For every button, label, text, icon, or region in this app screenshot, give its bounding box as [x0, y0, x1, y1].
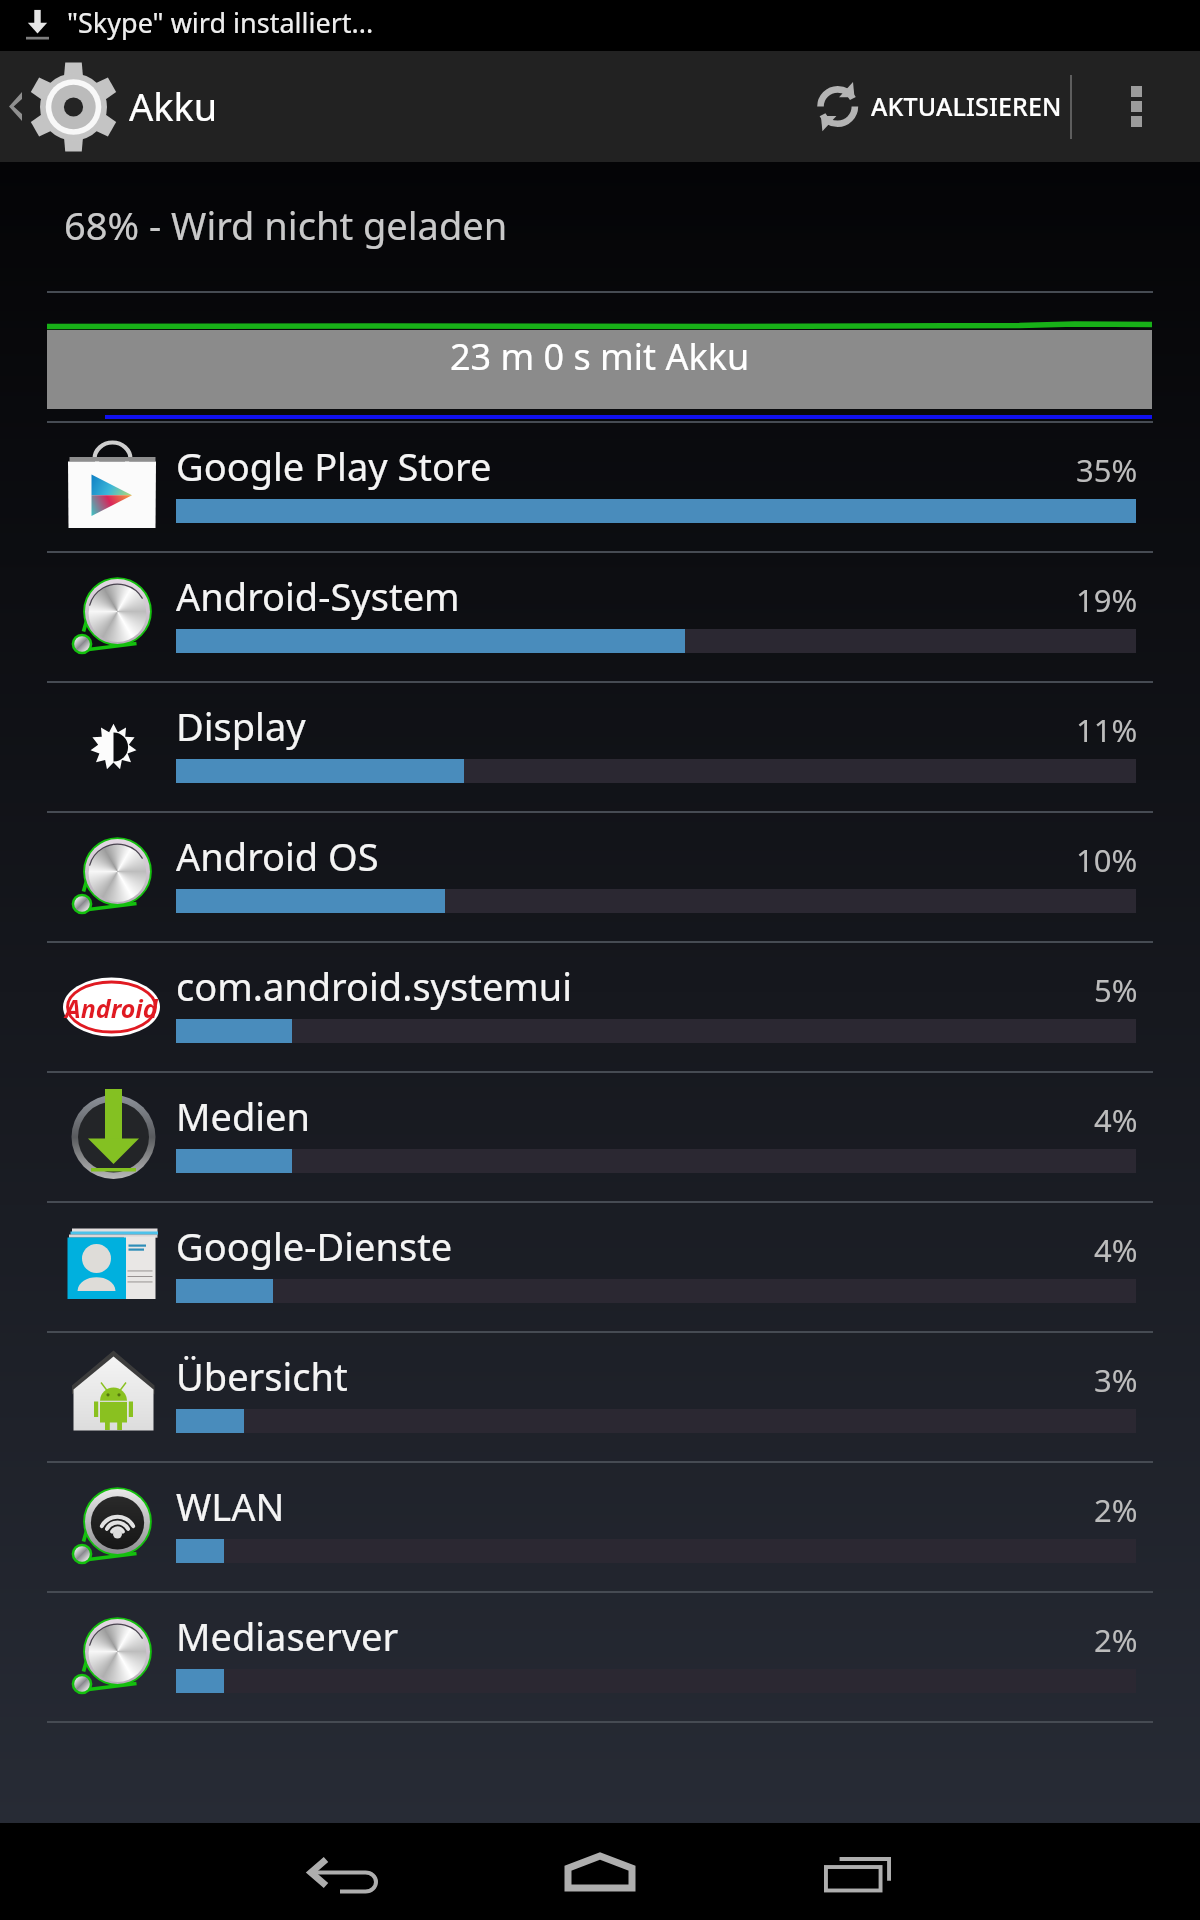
button[interactable]: Medien: [0, 1071, 1200, 1201]
button[interactable]: Übersicht: [0, 1331, 1200, 1461]
staticText: 68% - Wird nicht geladen: [64, 199, 508, 251]
staticText: Übersicht: [176, 1350, 348, 1402]
staticText: 4%: [1094, 1229, 1138, 1271]
button[interactable]: Android: [0, 941, 1200, 1071]
button[interactable]: Display: [0, 681, 1200, 811]
staticText: 2%: [1094, 1619, 1138, 1661]
button[interactable]: Home: [500, 1823, 700, 1920]
staticText: 35%: [1076, 449, 1138, 491]
staticText: Akku: [129, 80, 218, 132]
button[interactable]: WLAN: [0, 1461, 1200, 1591]
button[interactable]: Back: [244, 1823, 444, 1920]
staticText: 19%: [1076, 579, 1138, 621]
button[interactable]: Google-Dienste: [0, 1201, 1200, 1331]
staticText: "Skype" wird installiert...: [67, 4, 374, 41]
staticText: Display: [176, 700, 306, 752]
staticText: 4%: [1094, 1099, 1138, 1141]
staticText: 3%: [1094, 1359, 1138, 1401]
staticText: 10%: [1076, 839, 1138, 881]
button[interactable]: AKTUALISIEREN: [794, 51, 1070, 162]
staticText: Android-System: [176, 570, 460, 622]
button[interactable]: Android OS: [0, 811, 1200, 941]
button[interactable]: Back: [0, 51, 218, 162]
button[interactable]: Mediaserver: [0, 1591, 1200, 1721]
staticText: 11%: [1076, 709, 1138, 751]
staticText: 23 m 0 s mit Akku: [450, 332, 750, 381]
button[interactable]: Android-System: [0, 551, 1200, 681]
staticText: Google Play Store: [176, 440, 492, 492]
staticText: Mediaserver: [176, 1610, 399, 1662]
staticText: WLAN: [176, 1480, 285, 1532]
staticText: Android: [65, 991, 158, 1025]
staticText: Google-Dienste: [176, 1220, 453, 1272]
button[interactable]: Recent apps: [757, 1823, 957, 1920]
staticText: Medien: [176, 1090, 310, 1142]
button[interactable]: More options: [1072, 51, 1200, 162]
staticText: AKTUALISIEREN: [871, 89, 1062, 123]
staticText: Android OS: [176, 830, 379, 882]
staticText: com.android.systemui: [176, 960, 573, 1012]
staticText: 2%: [1094, 1489, 1138, 1531]
button[interactable]: Google Play Store: [0, 421, 1200, 551]
staticText: 5%: [1094, 969, 1138, 1011]
